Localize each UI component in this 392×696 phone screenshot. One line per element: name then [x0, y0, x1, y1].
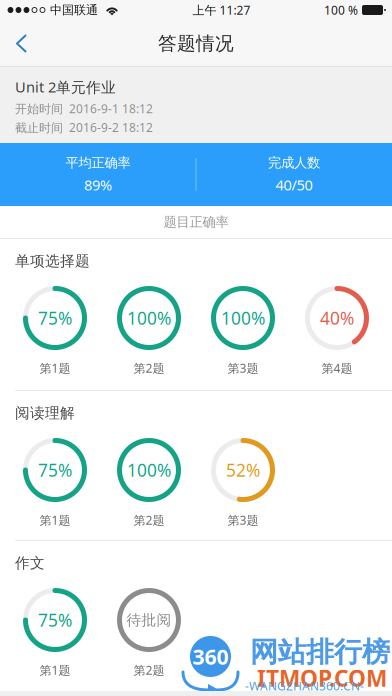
button[interactable]: 75%	[8, 286, 102, 376]
staticText: 第1题	[39, 512, 70, 528]
button[interactable]: 75%	[8, 588, 102, 678]
staticText: 第3题	[227, 360, 258, 376]
staticText: Unit 2单元作业	[15, 77, 116, 97]
staticText: 第4题	[321, 360, 352, 376]
button[interactable]: 75%	[8, 438, 102, 528]
button[interactable]: 100%	[102, 438, 196, 528]
staticText: 单项选择题	[15, 252, 90, 270]
staticText: 89%	[84, 175, 112, 194]
staticText: 开始时间 2016-9-1 18:12	[15, 101, 153, 116]
staticText: 第1题	[39, 662, 70, 678]
staticText: 上午 11:27	[192, 2, 250, 18]
button[interactable]: 40%	[290, 286, 384, 376]
staticText: 40/50	[275, 175, 312, 194]
staticText: 作文	[15, 554, 45, 572]
staticText: 第3题	[227, 512, 258, 528]
staticText: 网站排行榜	[250, 635, 390, 669]
staticText: 中国联通	[50, 3, 98, 17]
staticText: 待批阅	[126, 611, 171, 629]
staticText: 100%	[221, 306, 265, 329]
staticText: 第2题	[133, 662, 164, 678]
staticText: ITMOP.COM	[257, 663, 387, 693]
staticText: 360	[192, 642, 228, 671]
button[interactable]: 52%	[196, 438, 290, 528]
staticText: 100%	[127, 306, 171, 329]
staticText: 第1题	[39, 360, 70, 376]
button[interactable]: 待批阅	[102, 588, 196, 678]
staticText: 截止时间 2016-9-2 18:12	[15, 119, 153, 135]
staticText: 题目正确率	[163, 214, 228, 230]
staticText: 100 %	[324, 2, 358, 18]
staticText: 阅读理解	[15, 404, 75, 422]
button[interactable]: 返回	[0, 20, 41, 66]
staticText: 75%	[38, 306, 72, 329]
staticText: 完成人数	[268, 155, 320, 171]
staticText: 100%	[127, 458, 171, 481]
button[interactable]: 100%	[196, 286, 290, 376]
staticText: -WANGZHAN360.CN-	[245, 678, 364, 694]
staticText: 第2题	[133, 360, 164, 376]
staticText: 第2题	[133, 512, 164, 528]
staticText: 平均正确率	[65, 155, 130, 171]
staticText: 答题情况	[158, 32, 234, 55]
staticText: 75%	[38, 458, 72, 481]
staticText: 52%	[226, 458, 260, 481]
staticText: 75%	[38, 608, 72, 631]
staticText: 40%	[320, 306, 354, 329]
button[interactable]: 100%	[102, 286, 196, 376]
